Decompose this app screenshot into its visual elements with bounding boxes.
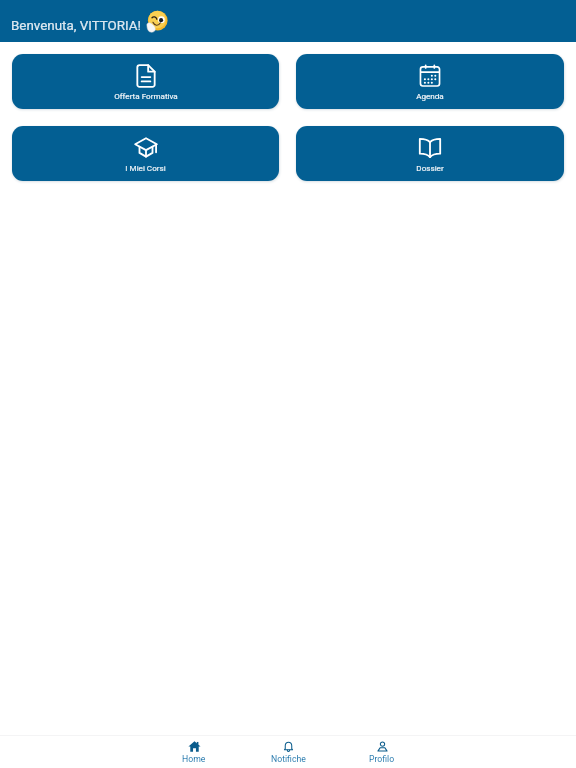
staticText: Benvenuta, VITTORIA! — [11, 18, 142, 34]
staticText: Home — [182, 754, 206, 764]
other: Calendar — [417, 63, 443, 89]
button[interactable]: Dossier — [296, 126, 564, 181]
other: Home — [188, 740, 201, 753]
button[interactable]: Calendar — [296, 54, 564, 109]
button[interactable]: Notifications — [241, 736, 335, 768]
button[interactable]: Document — [12, 54, 279, 109]
staticText: I Miei Corsi — [125, 163, 166, 172]
staticText: Offerta Formativa — [114, 91, 178, 100]
other: Dossier — [417, 135, 443, 161]
other: Document — [133, 63, 159, 89]
button[interactable]: Profile — [335, 736, 429, 768]
other: Courses — [133, 135, 159, 161]
staticText: Notifiche — [271, 754, 306, 764]
staticText: Dossier — [416, 163, 444, 172]
other: Notifications — [282, 740, 295, 753]
button[interactable]: Home — [147, 736, 241, 768]
staticText: Agenda — [416, 91, 444, 100]
staticText: Profilo — [369, 754, 395, 764]
other: Profile — [376, 740, 389, 753]
other: Winking face emoji — [143, 8, 169, 34]
button[interactable]: Courses — [12, 126, 279, 181]
